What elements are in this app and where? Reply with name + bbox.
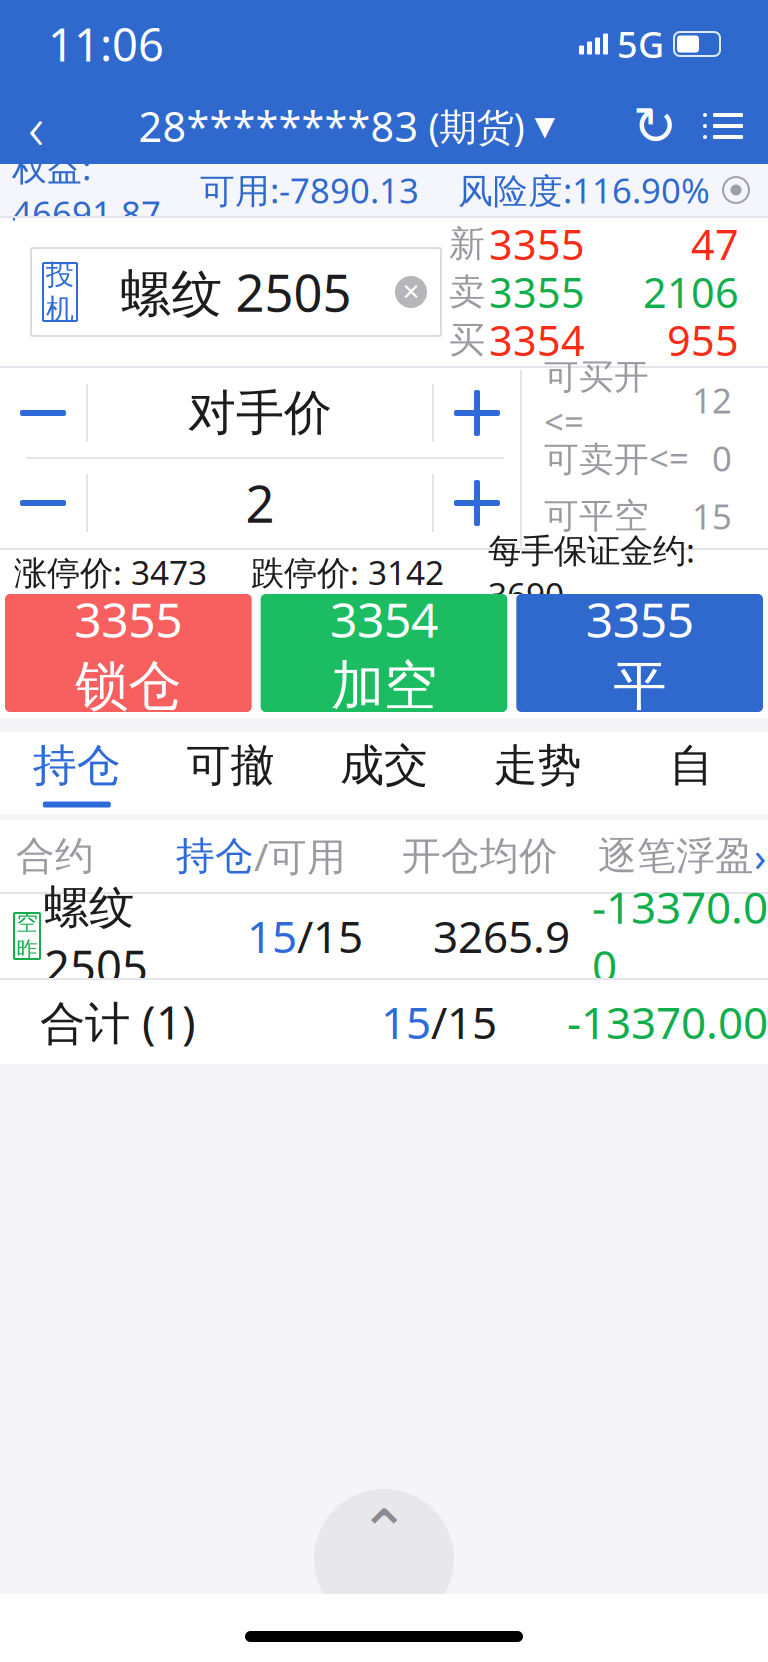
- staticText: 可买开<=: [544, 356, 649, 444]
- staticText: 买: [449, 318, 485, 362]
- staticText: 加空: [331, 653, 437, 719]
- staticText: 12: [692, 377, 732, 423]
- button[interactable]: Back: [0, 88, 72, 164]
- staticText: 可卖开<=: [544, 435, 689, 481]
- staticText: 11:06: [48, 14, 164, 74]
- staticText: 可用:-7890.13: [200, 167, 419, 213]
- staticText: 3265.9: [433, 907, 570, 965]
- staticText: 走势: [494, 738, 582, 792]
- button[interactable]: Decrease: [0, 459, 86, 547]
- staticText: /15: [297, 907, 363, 965]
- button[interactable]: 走势: [461, 732, 614, 814]
- staticText: 权益:46691.87: [12, 144, 161, 236]
- staticText: 47: [691, 217, 739, 271]
- staticText: 卖: [449, 270, 485, 314]
- staticText: 风险度:116.90%: [458, 167, 710, 213]
- staticText: ↻: [632, 96, 677, 156]
- staticText: 5G: [617, 20, 664, 68]
- staticText: 开仓均价: [402, 832, 558, 880]
- button[interactable]: Increase: [434, 369, 520, 457]
- staticText: 955: [667, 313, 739, 367]
- staticText: 持仓: [176, 832, 254, 880]
- staticText: 可撤: [186, 738, 274, 792]
- staticText: 每手保证金约: 3690: [488, 528, 695, 616]
- staticText: 15: [381, 993, 431, 1051]
- staticText: /15: [431, 993, 497, 1051]
- staticText: 自: [669, 738, 713, 792]
- staticText: 0: [712, 435, 732, 481]
- staticText: 新: [449, 222, 485, 266]
- button[interactable]: 成交: [307, 732, 461, 814]
- button[interactable]: 3355: [516, 594, 763, 712]
- staticText: 投: [46, 258, 74, 292]
- button[interactable]: Toggle balance visibility: [710, 164, 762, 216]
- staticText: ⌃: [358, 1497, 409, 1567]
- staticText: 逐笔浮盈: [598, 832, 754, 880]
- staticText: 跌停价: 3142: [251, 550, 444, 594]
- staticText: 3355: [489, 217, 585, 271]
- button[interactable]: 3355: [5, 594, 252, 712]
- staticText: 15: [692, 493, 732, 539]
- staticText: 3355: [586, 587, 694, 651]
- button[interactable]: 28********83: [138, 88, 555, 164]
- staticText: 机: [46, 292, 74, 326]
- button[interactable]: Decrease: [0, 369, 86, 457]
- staticText: ‹: [28, 85, 44, 167]
- button[interactable]: 持仓: [0, 732, 154, 814]
- staticText: ✕: [401, 279, 420, 305]
- staticText: 3354: [489, 313, 585, 367]
- staticText: 28********83: [138, 99, 418, 153]
- staticText: 螺纹 2505: [44, 876, 148, 996]
- staticText: 2: [245, 469, 274, 537]
- staticText: 螺纹 2505: [120, 258, 351, 326]
- staticText: -13370.00: [567, 993, 768, 1051]
- staticText: /可用: [254, 830, 346, 882]
- staticText: 持仓: [33, 738, 121, 792]
- button[interactable]: Refresh: [622, 88, 688, 164]
- staticText: 对手价: [188, 383, 332, 442]
- staticText: 3354: [330, 587, 438, 651]
- staticText: 成交: [340, 738, 428, 792]
- staticText: 昨: [16, 936, 37, 962]
- staticText: ›: [754, 829, 766, 882]
- staticText: 空: [16, 910, 37, 936]
- button[interactable]: 可撤: [154, 732, 307, 814]
- button[interactable]: Menu: [688, 88, 758, 164]
- button[interactable]: 投: [31, 248, 441, 336]
- staticText: 合约: [16, 832, 94, 880]
- button[interactable]: 自: [614, 732, 768, 814]
- staticText: 3355: [74, 587, 182, 651]
- button[interactable]: 空: [0, 894, 768, 978]
- staticText: 涨停价: 3473: [14, 550, 207, 594]
- staticText: 2106: [643, 265, 739, 319]
- button[interactable]: 3354: [261, 594, 507, 712]
- button[interactable]: Increase: [434, 459, 520, 547]
- staticText: (期货): [418, 101, 534, 151]
- staticText: 锁仓: [75, 653, 181, 719]
- staticText: 可平空: [544, 495, 649, 537]
- staticText: ▼: [534, 111, 555, 141]
- staticText: 平: [613, 653, 666, 719]
- staticText: -13370.00: [592, 878, 768, 994]
- staticText: 3355: [489, 265, 585, 319]
- staticText: 15: [247, 907, 297, 965]
- staticText: 合计 (1): [40, 992, 196, 1052]
